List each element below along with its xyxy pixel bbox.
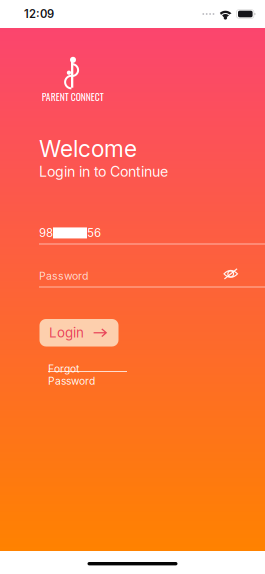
staticText: Welcome [39, 135, 137, 162]
staticText: Login in to Continue [39, 163, 168, 180]
staticText: Password [39, 269, 88, 282]
button[interactable]: Forgot Password [48, 362, 127, 373]
staticText: Forgot Password [48, 362, 95, 387]
button[interactable]: Show password [223, 270, 238, 282]
button[interactable]: Login [39, 319, 118, 346]
staticText: PARENT CONNECT [42, 89, 104, 104]
staticText: 56 [87, 226, 101, 240]
staticText: 98 [39, 226, 53, 240]
staticText: Login [49, 325, 84, 341]
staticText: 12:09 [24, 7, 54, 21]
